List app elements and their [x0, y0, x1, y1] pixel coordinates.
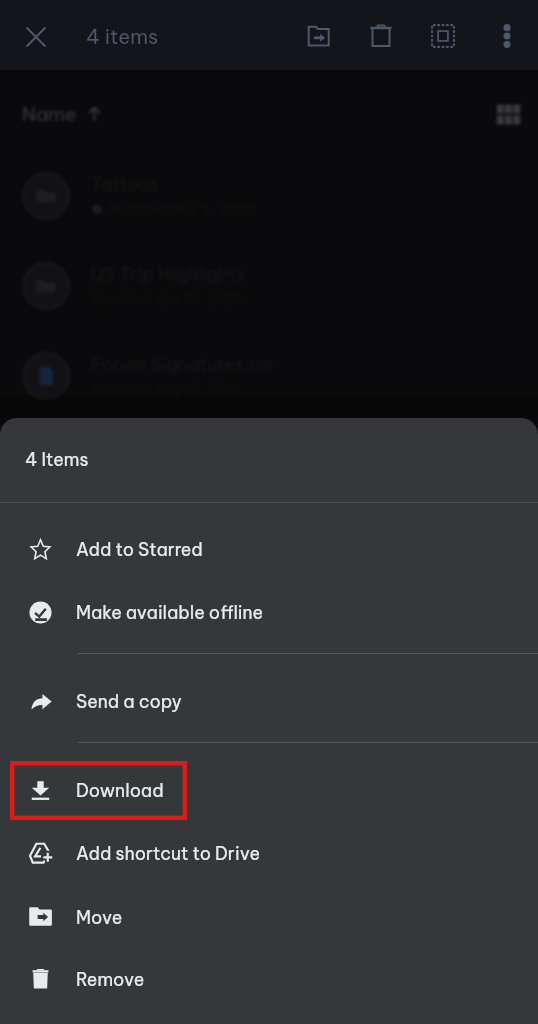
staticText: Add to Starred [76, 538, 203, 560]
button[interactable]: Forum Signatures.rar [0, 331, 538, 421]
button[interactable]: Add to Starred [0, 518, 538, 580]
button[interactable]: Remove [0, 948, 538, 1010]
button[interactable]: Download [0, 759, 538, 821]
staticText: Add shortcut to Drive [76, 842, 261, 864]
staticText: 4 Items [25, 448, 89, 470]
staticText: Send a copy [76, 690, 182, 712]
button[interactable]: More options [487, 16, 527, 56]
staticText: Name [22, 102, 77, 126]
button[interactable]: Close [16, 17, 56, 57]
button[interactable]: Grid view [491, 97, 525, 131]
button[interactable]: Move [0, 886, 538, 948]
staticText: 4 items [86, 24, 159, 49]
staticText: Remove [76, 968, 145, 990]
staticText: Move [76, 906, 123, 928]
button[interactable]: Name [22, 102, 103, 126]
button[interactable]: Select all [421, 14, 465, 58]
button[interactable]: Move [296, 14, 340, 58]
button[interactable]: Send a copy [0, 670, 538, 732]
button[interactable]: Make available offline [0, 581, 538, 643]
button[interactable]: Delete [359, 14, 403, 58]
staticText: Make available offline [76, 601, 264, 623]
button[interactable]: Add shortcut to Drive [0, 822, 538, 884]
staticText: Download [76, 779, 164, 801]
